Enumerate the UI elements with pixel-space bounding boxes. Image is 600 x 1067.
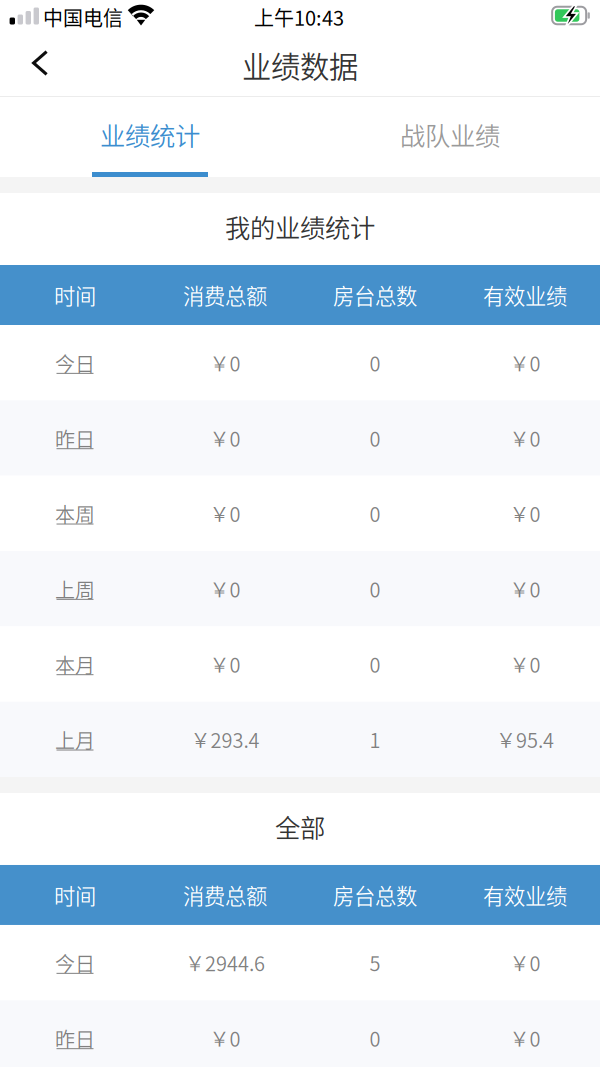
- staticText: 1: [369, 725, 380, 754]
- staticText: 中国电信: [43, 2, 123, 31]
- staticText: 昨日: [55, 424, 95, 453]
- staticText: 我的业绩统计: [225, 208, 375, 245]
- staticText: ￥2944.6: [185, 948, 265, 977]
- staticText: ￥0: [509, 348, 540, 377]
- staticText: 昨日: [55, 1024, 95, 1053]
- staticText: ￥0: [209, 574, 240, 603]
- staticText: 业绩统计: [100, 116, 200, 153]
- staticText: ￥0: [209, 348, 240, 377]
- staticText: 全部: [275, 808, 325, 845]
- staticText: 上周: [55, 575, 95, 604]
- staticText: ￥0: [509, 1023, 540, 1052]
- staticText: ￥0: [209, 423, 240, 452]
- staticText: 0: [369, 649, 380, 678]
- button[interactable]: Back: [6, 37, 74, 89]
- staticText: 时间: [54, 280, 96, 310]
- staticText: 本周: [55, 499, 95, 528]
- staticText: 5: [369, 948, 380, 977]
- staticText: 时间: [54, 879, 96, 910]
- staticText: 有效业绩: [483, 879, 567, 910]
- staticText: ￥0: [509, 948, 540, 977]
- staticText: 今日: [55, 949, 95, 978]
- staticText: ￥0: [209, 1023, 240, 1052]
- staticText: ￥0: [509, 499, 540, 528]
- staticText: ￥0: [209, 649, 240, 678]
- staticText: 本月: [55, 650, 95, 679]
- staticText: ￥95.4: [496, 725, 554, 754]
- staticText: 0: [369, 1023, 380, 1052]
- staticText: 0: [369, 348, 380, 377]
- staticText: 战队业绩: [400, 116, 500, 153]
- staticText: 0: [369, 423, 380, 452]
- staticText: 0: [369, 499, 380, 528]
- staticText: ￥0: [209, 499, 240, 528]
- staticText: 房台总数: [333, 879, 417, 910]
- button[interactable]: 业绩统计: [0, 97, 300, 177]
- staticText: 房台总数: [333, 280, 417, 310]
- staticText: 业绩数据: [242, 44, 358, 86]
- staticText: 0: [369, 574, 380, 603]
- staticText: 上午10:43: [254, 2, 344, 31]
- staticText: ￥0: [509, 574, 540, 603]
- staticText: ￥0: [509, 423, 540, 452]
- staticText: 今日: [55, 349, 95, 378]
- staticText: 消费总额: [183, 879, 267, 910]
- button[interactable]: 战队业绩: [300, 97, 600, 177]
- staticText: ￥0: [509, 649, 540, 678]
- staticText: 有效业绩: [483, 280, 567, 310]
- staticText: 消费总额: [183, 280, 267, 310]
- staticText: 上月: [55, 725, 95, 754]
- staticText: ￥293.4: [190, 725, 259, 754]
